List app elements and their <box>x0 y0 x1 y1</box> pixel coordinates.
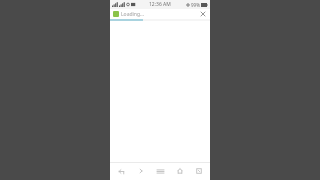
button[interactable]: Recent apps <box>192 164 206 178</box>
staticText: 99% <box>191 2 200 8</box>
staticText: Loading… <box>121 11 199 18</box>
button[interactable]: Menu <box>153 164 167 178</box>
button[interactable]: Back <box>114 164 128 178</box>
button[interactable]: Close <box>199 10 207 18</box>
staticText: 12:36 AM <box>149 1 171 8</box>
button[interactable]: Forward <box>134 164 148 178</box>
button[interactable]: Home <box>173 164 187 178</box>
